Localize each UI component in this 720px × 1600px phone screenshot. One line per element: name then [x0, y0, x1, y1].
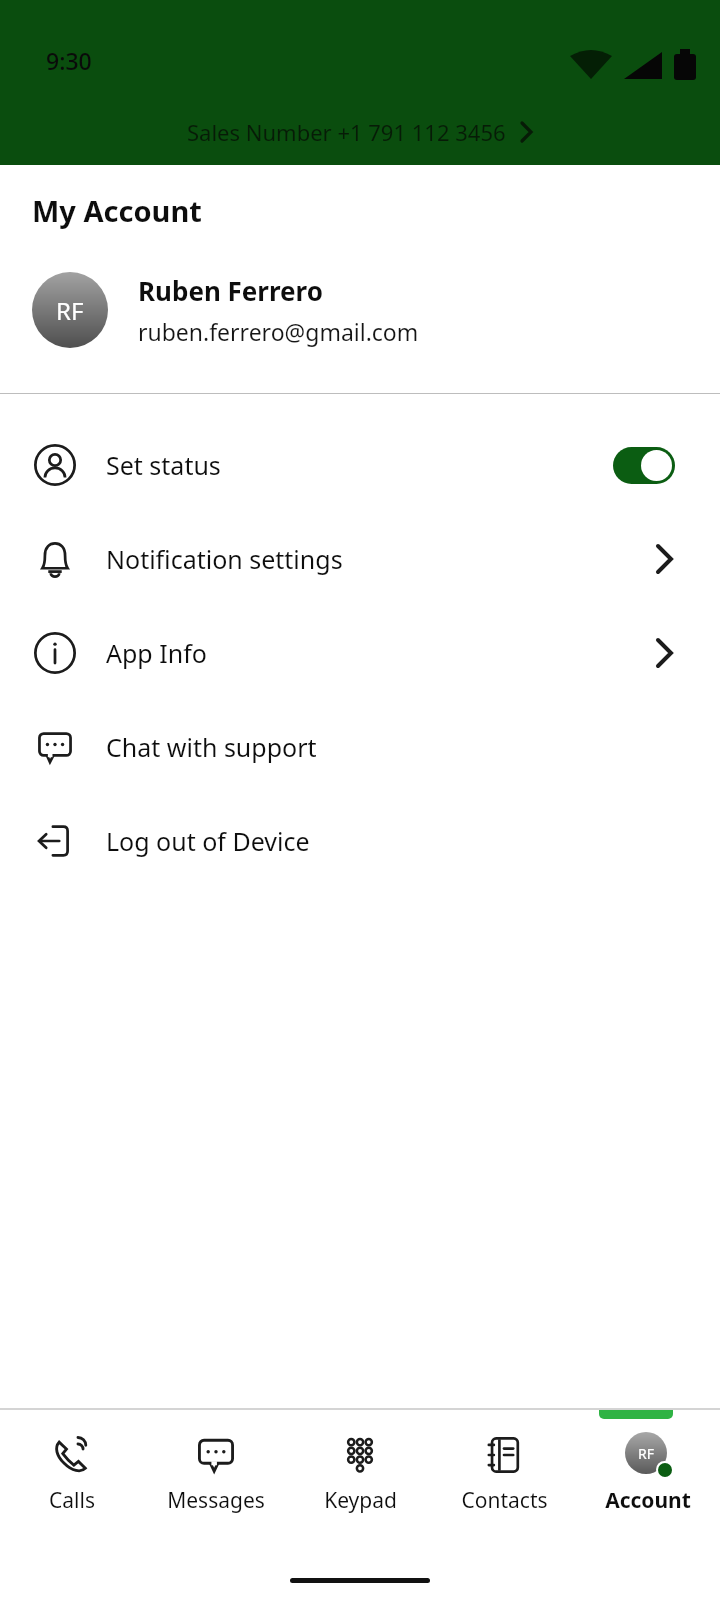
button[interactable]: Chat with support — [0, 700, 720, 794]
button[interactable]: App Info — [0, 606, 720, 700]
staticText: Chat with support — [106, 730, 317, 764]
button[interactable]: Calls — [0, 1410, 144, 1540]
staticText: App Info — [106, 636, 207, 670]
button[interactable]: Set status — [0, 418, 720, 512]
staticText: Contacts — [461, 1486, 548, 1515]
button[interactable]: Set status toggle — [613, 447, 675, 484]
button[interactable]: Notification settings — [0, 512, 720, 606]
staticText: RF — [638, 1444, 654, 1463]
button[interactable]: Contacts — [432, 1410, 576, 1540]
staticText: Notification settings — [106, 542, 343, 576]
staticText: Account — [605, 1486, 691, 1515]
button[interactable]: RF — [576, 1410, 720, 1540]
staticText: RF — [56, 294, 84, 327]
staticText: My Account — [32, 191, 202, 230]
button[interactable]: Log out of Device — [0, 794, 720, 888]
staticText: Messages — [167, 1486, 265, 1515]
staticText: Ruben Ferrero — [138, 273, 323, 308]
button[interactable]: Keypad — [288, 1410, 432, 1540]
staticText: Log out of Device — [106, 824, 310, 858]
button[interactable]: Messages — [144, 1410, 288, 1540]
staticText: 9:30 — [46, 45, 92, 76]
staticText: Sales Number +1 791 112 3456 — [187, 117, 506, 147]
staticText: ruben.ferrero@gmail.com — [138, 316, 419, 347]
staticText: Calls — [49, 1486, 95, 1515]
staticText: Keypad — [324, 1486, 397, 1515]
button[interactable]: Sales Number +1 791 112 3456 — [187, 117, 534, 147]
button[interactable]: RF — [0, 272, 720, 348]
staticText: Set status — [106, 448, 221, 482]
